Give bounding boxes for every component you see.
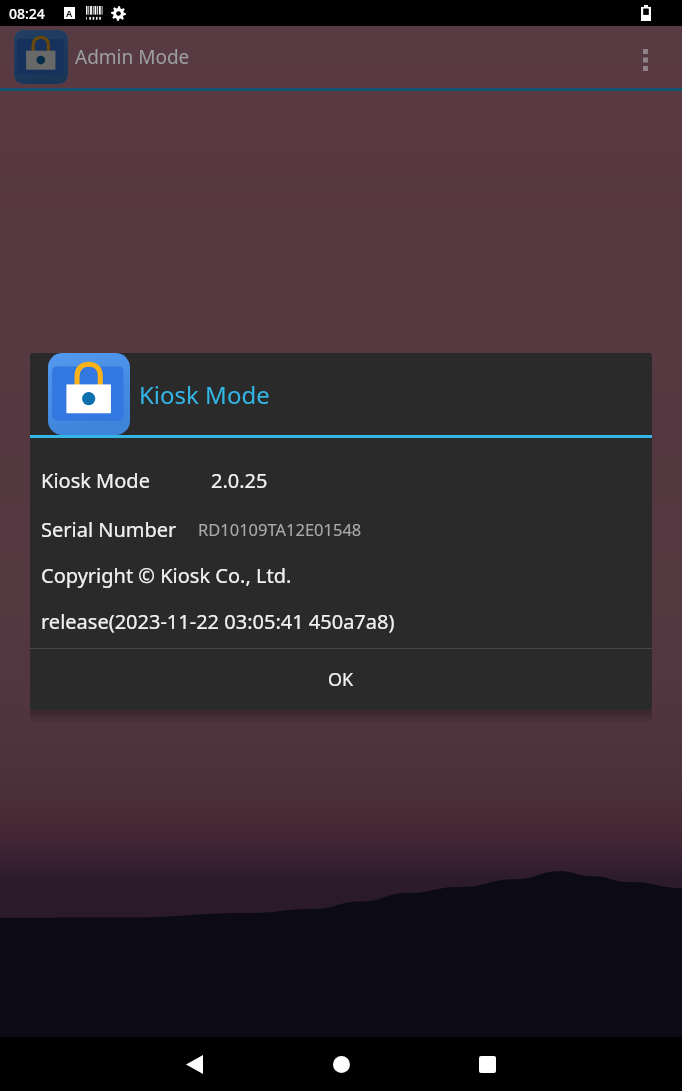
button[interactable]: Back xyxy=(166,1037,222,1091)
staticText: release(2023-11-22 03:05:41 450a7a8) xyxy=(41,608,395,635)
staticText: 08:24 xyxy=(9,4,45,23)
staticText: 2.0.25 xyxy=(211,467,268,494)
staticText: Copyright © Kiosk Co., Ltd. xyxy=(41,562,292,589)
button[interactable]: Recents xyxy=(459,1037,515,1091)
staticText: Admin Mode xyxy=(75,44,190,70)
staticText: RD10109TA12E01548 xyxy=(198,518,362,540)
button[interactable]: OK xyxy=(30,649,652,710)
staticText: Kiosk Mode xyxy=(139,378,270,411)
staticText: A xyxy=(66,7,73,18)
staticText: Serial Number xyxy=(41,516,177,543)
button[interactable]: Admin Mode xyxy=(0,26,682,88)
staticText: OK xyxy=(328,667,354,692)
button[interactable]: More options xyxy=(609,26,682,88)
staticText: Kiosk Mode xyxy=(41,467,150,494)
button[interactable]: Home xyxy=(313,1037,369,1091)
